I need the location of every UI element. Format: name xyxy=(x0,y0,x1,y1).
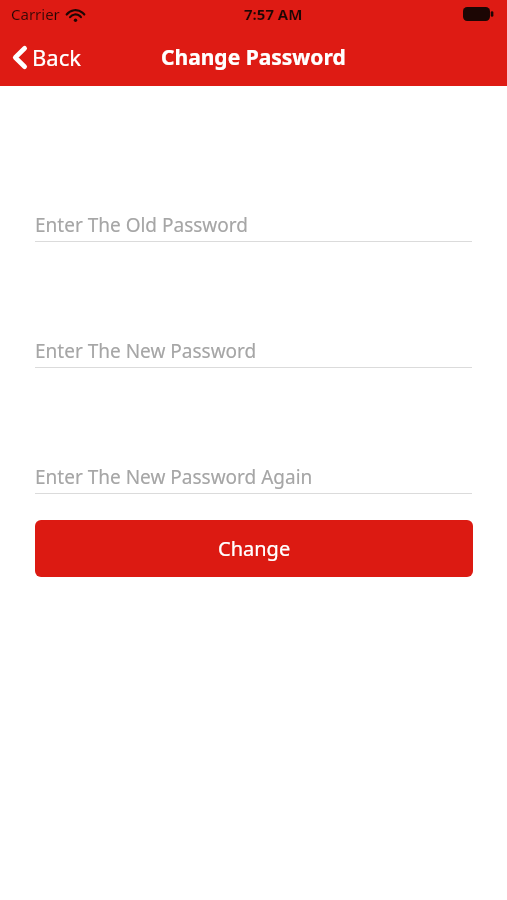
staticText: 7:57 AM xyxy=(244,4,303,24)
other: Battery full xyxy=(463,7,494,21)
other: Wi-Fi signal xyxy=(66,9,85,22)
button[interactable]: Enter The Old Password xyxy=(0,208,507,242)
button[interactable]: Enter The New Password Again xyxy=(0,460,507,494)
staticText: Carrier xyxy=(11,4,60,24)
button[interactable]: Enter The New Password xyxy=(0,334,507,368)
staticText: Enter The New Password xyxy=(35,338,257,364)
staticText: Enter The New Password Again xyxy=(35,464,313,490)
button[interactable]: Change xyxy=(35,520,473,577)
staticText: Change xyxy=(218,535,291,562)
button[interactable]: Back xyxy=(10,37,91,77)
staticText: Change Password xyxy=(161,43,346,72)
staticText: Back xyxy=(32,42,81,72)
staticText: Enter The Old Password xyxy=(35,212,248,238)
